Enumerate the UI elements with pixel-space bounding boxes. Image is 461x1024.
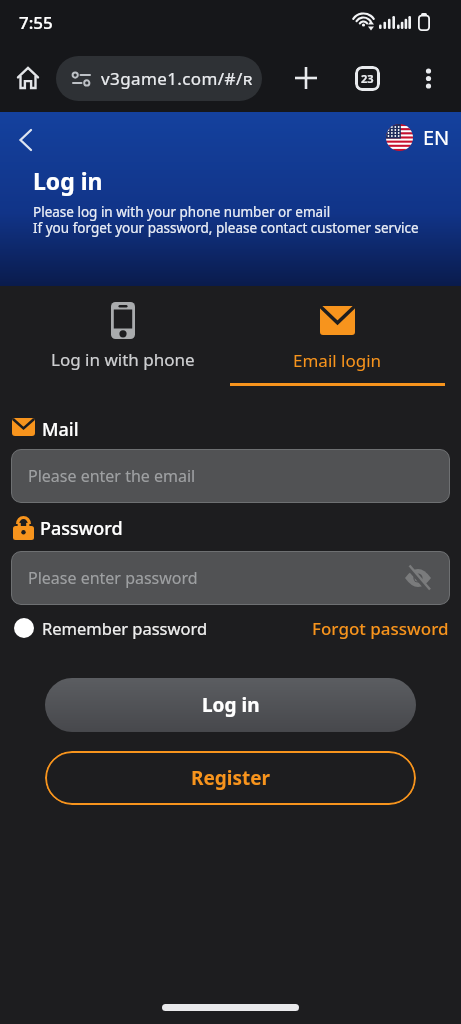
staticText: EN	[423, 124, 450, 151]
staticText: Log in	[33, 165, 103, 196]
button[interactable]	[13, 63, 43, 93]
staticText: Please log in with your phone number or …	[33, 203, 419, 237]
staticText: Password	[40, 516, 123, 540]
staticText: 7:55	[19, 11, 53, 34]
button[interactable]: Log in	[45, 678, 416, 732]
staticText: Log in with phone	[51, 348, 195, 371]
button[interactable]: Please enter the email	[11, 449, 450, 503]
staticText: Log in	[202, 692, 260, 718]
staticText: Please enter the email	[28, 465, 196, 487]
button[interactable]: v3game1.com/#/ʀ	[56, 56, 262, 101]
button[interactable]: Register	[45, 751, 416, 805]
staticText: Register	[191, 765, 271, 791]
button[interactable]: Please enter password	[11, 551, 450, 605]
button[interactable]	[416, 66, 440, 90]
staticText: Please enter password	[28, 567, 198, 589]
staticText: Email login	[293, 349, 382, 372]
staticText: 23	[361, 71, 374, 86]
staticText: Forgot password	[312, 617, 449, 639]
button[interactable]: EN	[386, 124, 450, 151]
button[interactable]: Email login	[230, 286, 445, 386]
button[interactable]: 23	[355, 66, 380, 91]
button[interactable]: Forgot password	[312, 617, 449, 639]
button[interactable]	[12, 127, 38, 153]
button[interactable]	[293, 65, 319, 91]
staticText: Remember password	[42, 617, 208, 639]
staticText: Mail	[42, 417, 79, 437]
button[interactable]: Log in with phone	[16, 286, 230, 386]
button[interactable]	[14, 618, 34, 638]
staticText: v3game1.com/#/ʀ	[101, 67, 253, 90]
